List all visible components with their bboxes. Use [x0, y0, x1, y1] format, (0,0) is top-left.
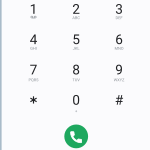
- button[interactable]: 3 DEF: [0, 0, 150, 150]
- button[interactable]: 9 WXYZ: [0, 0, 150, 150]
- button[interactable]: 5 JKL: [0, 0, 150, 150]
- button[interactable]: 1: [0, 0, 150, 150]
- button[interactable]: 7 PQRS: [0, 0, 150, 150]
- button[interactable]: 8 TUV: [0, 0, 150, 150]
- button[interactable]: #: [0, 0, 150, 150]
- button[interactable]: Call: [64, 124, 88, 148]
- button[interactable]: 0 +: [0, 0, 150, 150]
- button[interactable]: 2 ABC: [0, 0, 150, 150]
- button[interactable]: *: [0, 0, 150, 150]
- button[interactable]: 6 MNO: [0, 0, 150, 150]
- button[interactable]: 4 GHI: [0, 0, 150, 150]
